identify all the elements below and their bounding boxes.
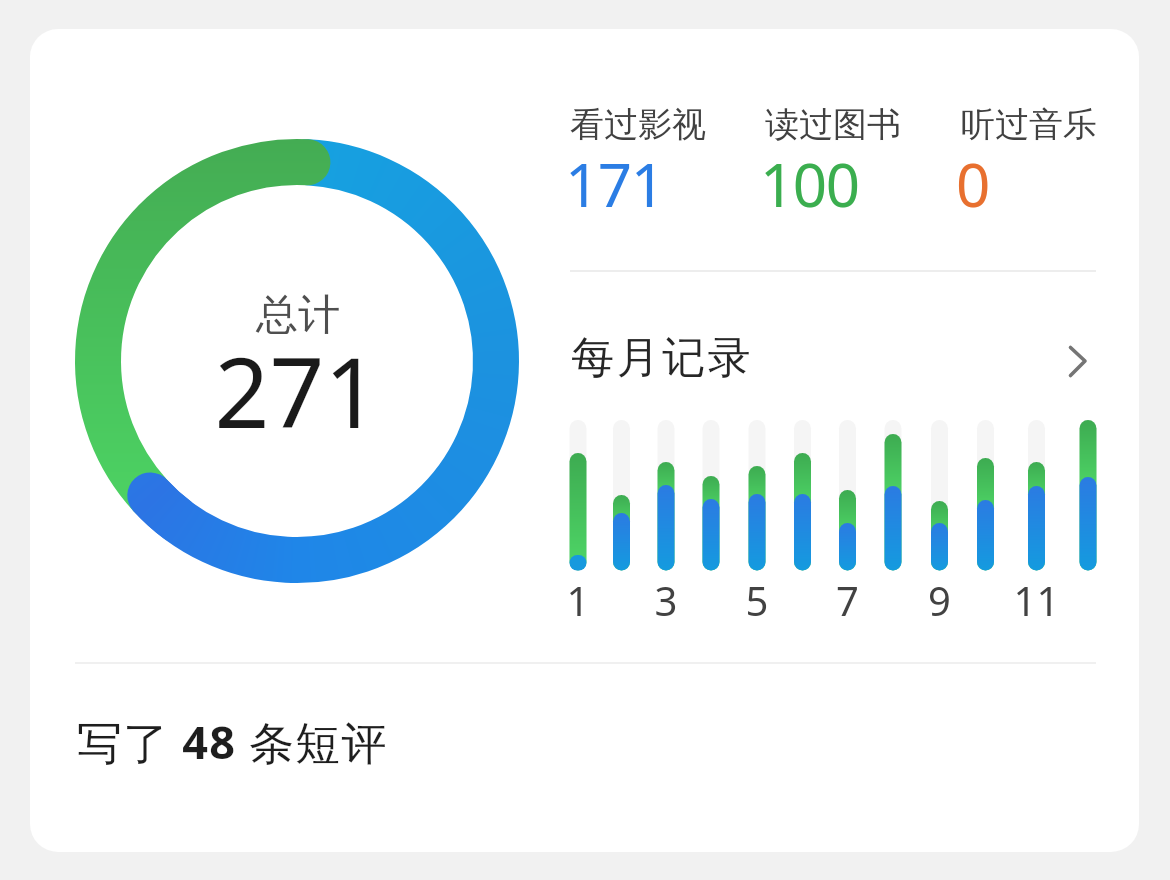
button[interactable] <box>560 330 1100 390</box>
